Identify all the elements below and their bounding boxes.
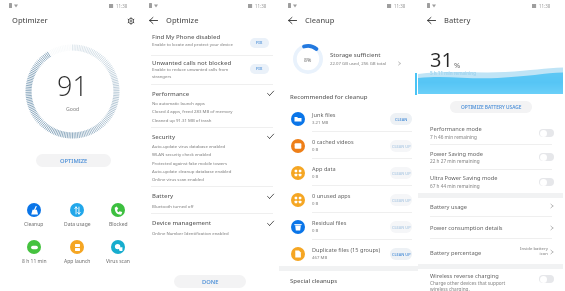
- staticText: 11:38: [116, 3, 128, 9]
- staticText: Online Number Identification enabled: [152, 230, 229, 236]
- button[interactable]: Settings: [124, 14, 137, 27]
- staticText: Data usage: [64, 221, 91, 228]
- button[interactable]: FIX: [250, 38, 269, 48]
- button[interactable]: OPTIMIZE: [36, 154, 111, 167]
- staticText: Auto-update virus database enabled: [152, 143, 226, 149]
- button[interactable]: 0 unused apps: [279, 186, 418, 213]
- staticText: CLEAN UP: [392, 171, 411, 176]
- staticText: Junk files: [312, 111, 336, 119]
- staticText: 8 h 11 min: [22, 258, 47, 265]
- staticText: 11:38: [394, 3, 406, 9]
- staticText: Ultra Power Saving mode: [430, 174, 498, 182]
- staticText: 0 B: [312, 200, 319, 206]
- staticText: 467 MB: [312, 254, 328, 260]
- staticText: Protected against fake mobile towers: [152, 160, 228, 166]
- staticText: Wireless reverse charging: [430, 272, 499, 280]
- staticText: 31: [430, 46, 453, 73]
- button[interactable]: CLEAN UP: [390, 140, 412, 152]
- button[interactable]: Wireless reverse charging: [539, 275, 554, 283]
- staticText: CLEAN UP: [392, 225, 411, 230]
- staticText: Auto-update cleanup database enabled: [152, 168, 232, 174]
- staticText: 0 B: [312, 173, 319, 179]
- staticText: OPTIMIZE BATTERY USAGE: [461, 104, 522, 111]
- button[interactable]: Duplicate files (15 groups): [279, 240, 418, 267]
- staticText: Device management: [152, 219, 212, 227]
- staticText: 7 h 46 min remaining: [430, 134, 477, 140]
- staticText: CLEAN: [395, 117, 408, 122]
- button[interactable]: Back: [425, 14, 438, 27]
- button[interactable]: DONE: [174, 275, 246, 288]
- staticText: Virus scan: [106, 258, 130, 265]
- staticText: Recommended for cleanup: [290, 93, 368, 101]
- staticText: %: [454, 60, 461, 70]
- staticText: Performance mode: [430, 125, 482, 133]
- staticText: 67 h 44 min remaining: [430, 183, 480, 189]
- button[interactable]: App launch: [56, 240, 98, 265]
- button[interactable]: Virus scan: [97, 240, 139, 265]
- staticText: strangers: [152, 73, 172, 79]
- staticText: Good: [66, 105, 80, 112]
- button[interactable]: Junk files: [279, 105, 418, 132]
- button[interactable]: Back: [286, 14, 299, 27]
- button[interactable]: Power Saving mode: [539, 153, 554, 161]
- staticText: Storage sufficient: [330, 51, 381, 59]
- staticText: Cleaned up 91.31 MB of trash: [152, 117, 212, 123]
- staticText: Battery: [152, 192, 174, 200]
- staticText: 0 unused apps: [312, 192, 351, 200]
- button[interactable]: OPTIMIZE BATTERY USAGE: [450, 101, 532, 113]
- staticText: CLEAN UP: [392, 252, 411, 257]
- button[interactable]: Residual files: [279, 213, 418, 240]
- staticText: Optimizer: [12, 15, 48, 25]
- staticText: 5 h 11 min remaining: [430, 70, 476, 76]
- staticText: Battery percentage: [430, 249, 482, 257]
- button[interactable]: CLEAN UP: [390, 167, 412, 179]
- staticText: 3.21 MB: [312, 119, 329, 125]
- staticText: OPTIMIZE: [60, 157, 88, 165]
- button[interactable]: 8 h 11 min: [13, 240, 55, 265]
- staticText: No automatic launch apps: [152, 100, 205, 106]
- staticText: App launch: [64, 258, 91, 265]
- button[interactable]: App data: [279, 159, 418, 186]
- button[interactable]: FIX: [250, 64, 269, 74]
- staticText: Security: [152, 133, 176, 141]
- staticText: Enable to reduce unwanted calls from: [152, 66, 229, 72]
- button[interactable]: CLEAN: [390, 113, 412, 125]
- button[interactable]: Back: [147, 14, 160, 27]
- staticText: Performance: [152, 90, 190, 98]
- button[interactable]: Performance mode: [539, 129, 554, 137]
- staticText: Inside battery icon: [510, 245, 548, 256]
- staticText: 22 h 27 min remaining: [430, 158, 480, 164]
- staticText: 91: [57, 67, 88, 104]
- staticText: 0 cached videos: [312, 138, 354, 146]
- staticText: Unwanted calls not blocked: [152, 59, 232, 67]
- staticText: CLEAN UP: [392, 144, 411, 149]
- staticText: Bluetooth turned off: [152, 203, 194, 209]
- staticText: CLEAN UP: [392, 198, 411, 203]
- staticText: Power Saving mode: [430, 150, 483, 158]
- button[interactable]: 0 cached videos: [279, 132, 418, 159]
- button[interactable]: Data usage: [56, 203, 98, 228]
- staticText: Optimize: [166, 15, 199, 25]
- button[interactable]: Blocked: [97, 203, 139, 228]
- staticText: DONE: [202, 278, 219, 286]
- staticText: FIX: [256, 66, 263, 72]
- button[interactable]: Cleanup: [13, 203, 55, 228]
- button[interactable]: CLEAN UP: [390, 248, 412, 260]
- staticText: Blocked: [109, 221, 128, 228]
- staticText: Enable to locate and protect your device: [152, 41, 233, 47]
- staticText: 11:38: [539, 3, 551, 9]
- button[interactable]: CLEAN UP: [390, 221, 412, 233]
- staticText: WLAN security check enabled: [152, 151, 212, 157]
- staticText: 0 B: [312, 227, 319, 233]
- staticText: Battery: [444, 15, 471, 25]
- staticText: Special cleanups: [290, 277, 338, 285]
- staticText: 11:38: [255, 3, 267, 9]
- staticText: Residual files: [312, 219, 347, 227]
- button[interactable]: CLEAN UP: [390, 194, 412, 206]
- staticText: Online virus scan enabled: [152, 176, 204, 182]
- button[interactable]: Ultra Power Saving mode: [539, 178, 554, 186]
- staticText: 8%: [304, 56, 312, 63]
- staticText: Closed 4 apps, freed 283 MB of memory: [152, 108, 233, 114]
- staticText: Find My Phone disabled: [152, 33, 221, 41]
- staticText: Charge other devices that support wirele…: [430, 280, 506, 291]
